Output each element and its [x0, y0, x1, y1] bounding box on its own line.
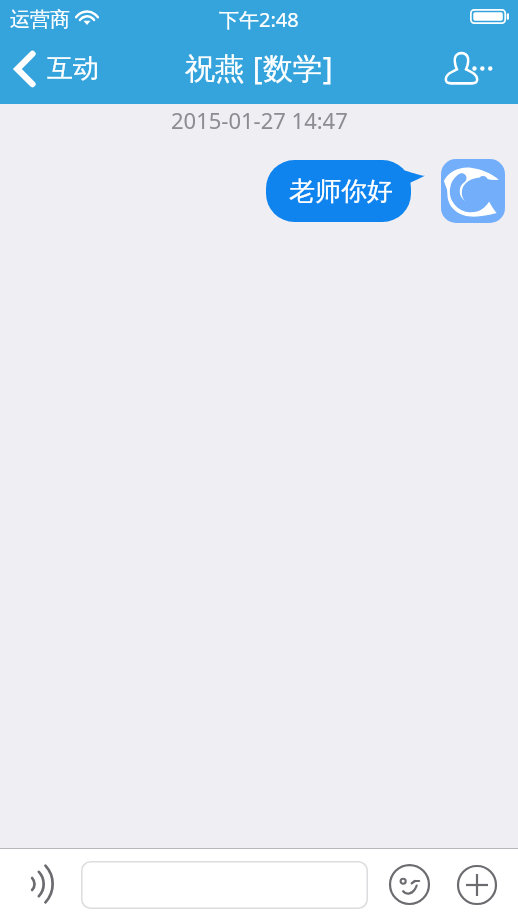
staticText: 祝燕 [数学] [185, 47, 333, 88]
staticText: 下午2:48 [219, 6, 299, 33]
button[interactable]: 互动 [0, 45, 113, 97]
staticText: 运营商 [10, 7, 70, 32]
button[interactable]: Contact info [433, 46, 518, 97]
button[interactable]: Voice input [0, 854, 80, 916]
button[interactable]: Sender avatar [441, 159, 505, 223]
staticText: 老师你好 [289, 175, 393, 208]
button[interactable]: Add attachment [448, 855, 506, 914]
button[interactable]: Emoji [380, 855, 439, 914]
staticText: 互动 [47, 52, 99, 85]
staticText: 2015-01-27 14:47 [171, 105, 348, 135]
button[interactable] [81, 861, 368, 909]
button[interactable]: 老师你好 [266, 160, 425, 222]
